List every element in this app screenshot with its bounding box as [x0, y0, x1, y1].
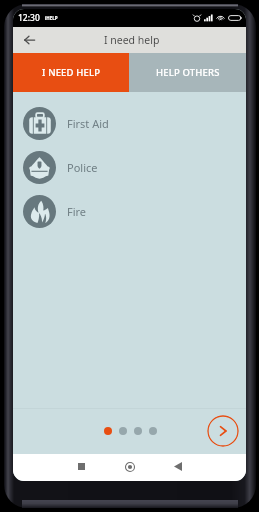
- button[interactable]: Back: [167, 455, 189, 477]
- button[interactable]: Fire: [13, 189, 246, 233]
- button[interactable]: Recent apps: [70, 455, 92, 477]
- staticText: Fire: [67, 204, 87, 219]
- button[interactable]: HELP OTHERS: [129, 53, 246, 92]
- staticText: First Aid: [67, 116, 109, 131]
- button[interactable]: Back: [19, 30, 39, 50]
- button[interactable]: I NEED HELP: [13, 53, 129, 92]
- button[interactable]: Police: [13, 145, 246, 189]
- button[interactable]: Home: [119, 456, 141, 478]
- staticText: Police: [67, 160, 98, 175]
- staticText: iHELP: [45, 15, 58, 21]
- staticText: I need help: [104, 33, 160, 47]
- button[interactable]: First Aid: [13, 101, 246, 145]
- button[interactable]: Next: [207, 415, 239, 447]
- staticText: 12:30: [18, 12, 40, 24]
- staticText: HELP OTHERS: [156, 66, 220, 79]
- staticText: I NEED HELP: [42, 66, 101, 79]
